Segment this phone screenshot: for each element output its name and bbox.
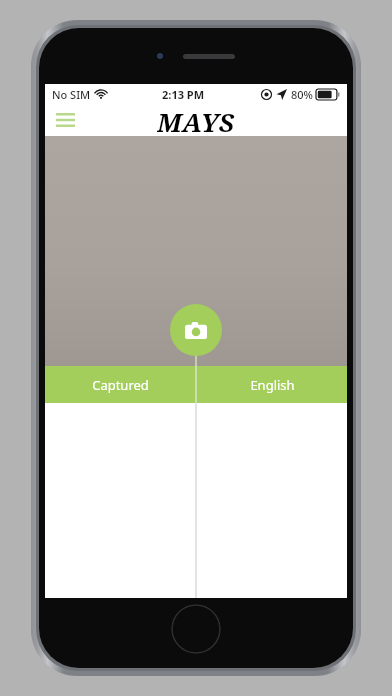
- button[interactable]: Menu: [48, 104, 82, 136]
- staticText: MAYS: [157, 104, 235, 136]
- staticText: 80%: [291, 87, 313, 102]
- staticText: English: [250, 376, 295, 394]
- staticText: No SIM: [52, 87, 91, 102]
- button[interactable]: English: [197, 366, 347, 403]
- button[interactable]: Captured: [45, 366, 195, 403]
- staticText: Captured: [92, 376, 149, 394]
- button[interactable]: Capture photo: [170, 304, 222, 356]
- staticText: 2:13 PM: [162, 87, 205, 102]
